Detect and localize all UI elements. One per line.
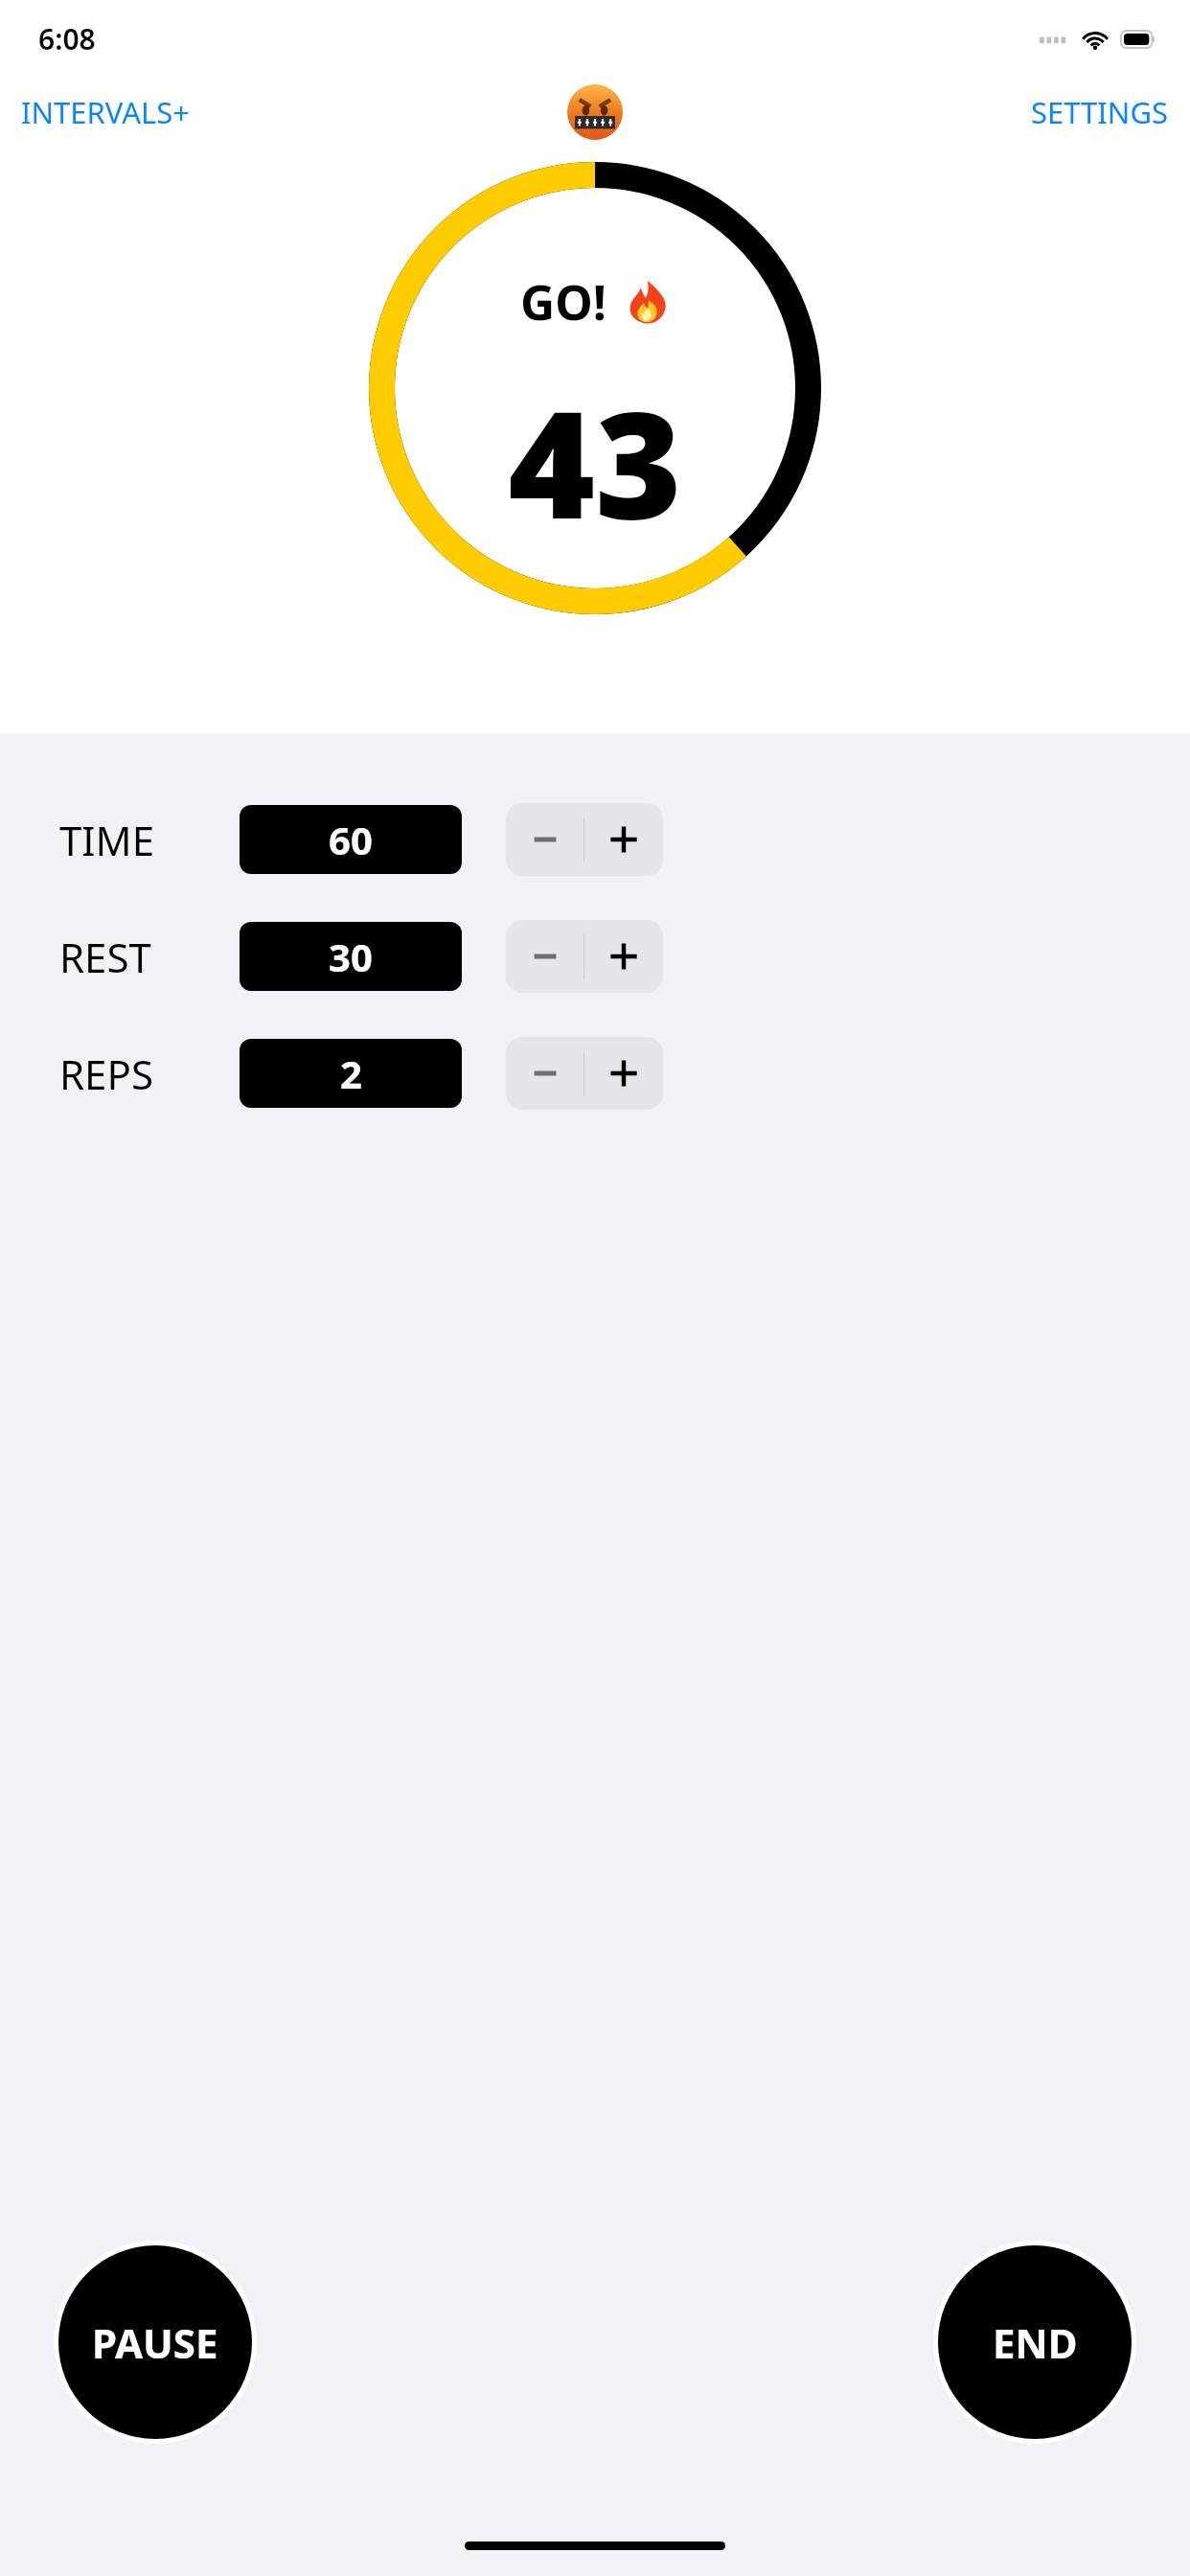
button[interactable]: END: [938, 2245, 1132, 2439]
button[interactable]: Mood: [565, 82, 625, 142]
button[interactable]: Increase TIME: [584, 803, 663, 876]
button[interactable]: Increase REPS: [584, 1037, 663, 1110]
staticText: TIME: [59, 813, 155, 867]
button[interactable]: 60: [240, 805, 462, 874]
staticText: 2: [340, 1047, 362, 1099]
button[interactable]: SETTINGS: [1010, 80, 1190, 144]
staticText: GO!: [520, 269, 606, 334]
button[interactable]: Decrease REPS: [506, 1037, 584, 1110]
staticText: PAUSE: [92, 2315, 218, 2370]
staticText: SETTINGS: [1031, 92, 1169, 132]
staticText: 43: [508, 359, 682, 562]
button[interactable]: PAUSE: [58, 2245, 252, 2439]
staticText: 6:08: [38, 19, 96, 58]
staticText: REPS: [59, 1046, 153, 1101]
button[interactable]: Decrease TIME: [506, 803, 584, 876]
staticText: REST: [59, 930, 151, 984]
staticText: INTERVALS+: [21, 92, 190, 132]
staticText: END: [993, 2315, 1078, 2370]
button[interactable]: Decrease REST: [506, 920, 584, 993]
staticText: 30: [329, 931, 373, 982]
button[interactable]: Increase REST: [584, 920, 663, 993]
staticText: 60: [329, 814, 373, 865]
button[interactable]: INTERVALS+: [0, 80, 211, 144]
button[interactable]: 2: [240, 1039, 462, 1108]
button[interactable]: 30: [240, 922, 462, 991]
